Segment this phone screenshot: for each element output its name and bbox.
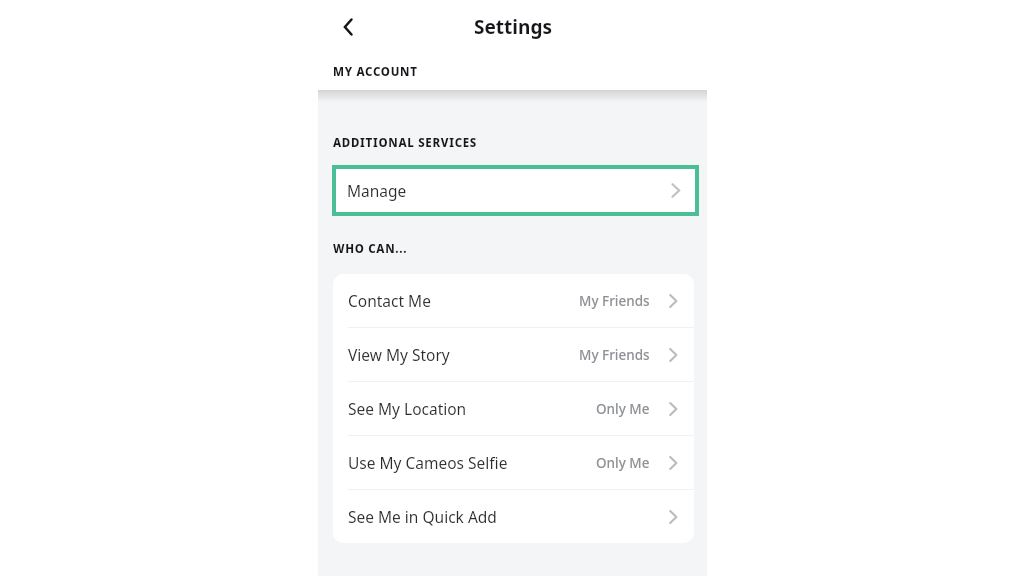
staticText: Use My Cameos Selfie — [348, 452, 508, 473]
staticText: Manage — [347, 180, 407, 201]
button[interactable]: View My Story — [333, 328, 694, 381]
staticText: My Friends — [579, 292, 650, 310]
staticText: ADDITIONAL SERVICES — [333, 135, 478, 151]
staticText: Only Me — [596, 400, 650, 418]
staticText: Only Me — [596, 454, 650, 472]
staticText: My Friends — [579, 346, 650, 364]
staticText: See Me in Quick Add — [348, 506, 497, 527]
button[interactable]: Back — [326, 5, 370, 49]
button[interactable]: See My Location — [333, 382, 694, 435]
staticText: View My Story — [348, 344, 450, 365]
button[interactable]: Contact Me — [333, 274, 694, 327]
staticText: Settings — [474, 14, 552, 40]
button[interactable]: Manage — [336, 169, 695, 212]
staticText: WHO CAN... — [333, 241, 408, 257]
button[interactable]: See Me in Quick Add — [333, 490, 694, 543]
staticText: Contact Me — [348, 290, 431, 311]
staticText: MY ACCOUNT — [333, 64, 418, 80]
staticText: See My Location — [348, 398, 467, 419]
button[interactable]: Use My Cameos Selfie — [333, 436, 694, 489]
